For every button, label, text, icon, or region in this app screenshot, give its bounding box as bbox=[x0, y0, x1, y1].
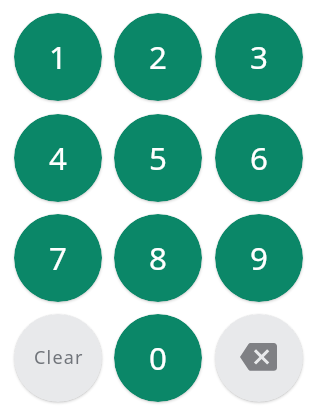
button[interactable]: 6 bbox=[215, 114, 303, 202]
staticText: 8 bbox=[149, 237, 167, 280]
staticText: 3 bbox=[250, 36, 268, 79]
staticText: 5 bbox=[149, 137, 167, 180]
button[interactable]: 9 bbox=[215, 214, 303, 302]
button[interactable]: Clear bbox=[14, 314, 102, 402]
button[interactable]: 8 bbox=[114, 214, 202, 302]
staticText: 0 bbox=[149, 337, 167, 380]
staticText: 6 bbox=[250, 137, 268, 180]
staticText: Clear bbox=[34, 345, 84, 370]
button[interactable]: 5 bbox=[114, 114, 202, 202]
button[interactable]: 4 bbox=[14, 114, 102, 202]
staticText: 9 bbox=[250, 237, 268, 280]
button[interactable]: Backspace bbox=[215, 314, 303, 402]
button[interactable]: 3 bbox=[215, 13, 303, 101]
button[interactable]: 1 bbox=[14, 13, 102, 101]
staticText: 4 bbox=[49, 137, 67, 180]
button[interactable]: 2 bbox=[114, 13, 202, 101]
staticText: 7 bbox=[49, 237, 67, 280]
button[interactable]: 0 bbox=[114, 314, 202, 402]
button[interactable]: 7 bbox=[14, 214, 102, 302]
staticText: 2 bbox=[149, 36, 167, 79]
staticText: 1 bbox=[49, 36, 67, 79]
